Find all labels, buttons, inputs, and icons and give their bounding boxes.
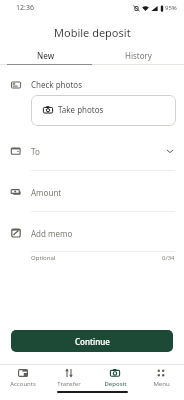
staticText: Add memo — [31, 228, 73, 239]
staticText: Check photos — [31, 79, 82, 90]
staticText: 95% — [165, 4, 177, 12]
button[interactable]: Add memo — [11, 223, 175, 243]
staticText: History — [125, 50, 152, 61]
button[interactable]: Accounts — [0, 365, 46, 400]
button[interactable]: Menu — [138, 365, 184, 400]
staticText: Optional — [31, 254, 56, 262]
button[interactable]: To — [11, 141, 175, 161]
button[interactable]: Transfer — [46, 365, 92, 400]
button[interactable]: Deposit — [92, 365, 138, 400]
staticText: Continue — [75, 336, 110, 347]
staticText: Menu — [153, 380, 170, 388]
button[interactable]: Take photos — [31, 95, 176, 126]
staticText: Mobile deposit — [54, 25, 131, 40]
staticText: Amount — [31, 187, 62, 198]
button[interactable]: Continue — [11, 330, 173, 352]
button[interactable]: History — [92, 46, 184, 64]
staticText: New — [37, 50, 55, 61]
staticText: Deposit — [104, 380, 127, 388]
staticText: To — [31, 146, 40, 157]
button[interactable]: Amount — [11, 182, 175, 202]
staticText: Transfer — [57, 380, 81, 388]
staticText: 0/34 — [162, 254, 175, 262]
staticText: Accounts — [10, 380, 36, 388]
button[interactable]: New — [0, 46, 92, 64]
staticText: Take photos — [58, 104, 104, 115]
staticText: 12:36 — [16, 3, 34, 13]
